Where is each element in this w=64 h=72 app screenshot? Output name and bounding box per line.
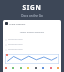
button[interactable]: Document item: [5, 42, 59, 47]
button[interactable]: Acme Contract: [5, 22, 59, 25]
staticText: SIGN: [0, 3, 64, 12]
staticText: Latest activity summary: [3, 31, 61, 34]
staticText: Document item: [8, 48, 23, 51]
staticText: Acme Contract: [9, 22, 26, 25]
button[interactable]: Document item: [5, 47, 59, 52]
button[interactable]: Document item: [5, 37, 59, 42]
staticText: Docs on the Go: [0, 14, 64, 18]
staticText: Document item: [8, 43, 23, 46]
staticText: Document item: [8, 38, 23, 41]
